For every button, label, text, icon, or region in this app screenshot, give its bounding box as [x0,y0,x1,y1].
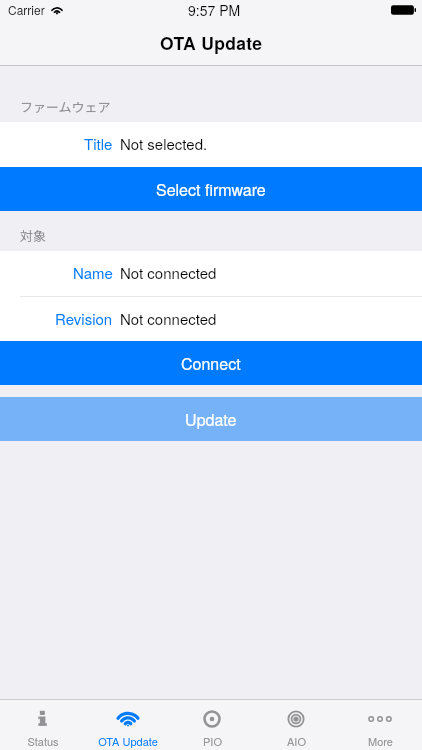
staticText: 9:57 PM [188,0,241,18]
staticText: ファームウェア [20,97,111,116]
button[interactable]: Connect [0,341,422,385]
button[interactable]: Status tab [0,700,85,750]
button[interactable]: OTA Update tab [85,700,170,750]
staticText: 対象 [20,226,47,245]
staticText: Select firmware [156,178,266,201]
button[interactable]: Select firmware [0,167,422,211]
button[interactable]: AIO tab [254,700,338,750]
staticText: PIO [203,733,222,749]
staticText: OTA Update [98,733,158,749]
button[interactable]: Revision [0,297,422,341]
staticText: AIO [287,733,306,749]
staticText: Name [73,262,113,283]
staticText: Revision [55,308,113,329]
button[interactable]: Update [0,397,422,441]
button[interactable]: More tab [338,700,422,750]
staticText: Title [84,133,113,154]
staticText: Not connected [120,308,217,329]
staticText: Not selected. [120,133,208,154]
button[interactable]: Name [0,251,422,296]
staticText: Carrier [8,1,45,18]
button[interactable]: PIO tab [170,700,254,750]
button[interactable]: Title [0,122,422,167]
staticText: More [368,733,393,749]
staticText: Update [185,408,237,431]
staticText: Status [27,733,59,749]
staticText: Connect [181,352,241,375]
staticText: Not connected [120,262,217,283]
staticText: OTA Update [160,30,263,55]
